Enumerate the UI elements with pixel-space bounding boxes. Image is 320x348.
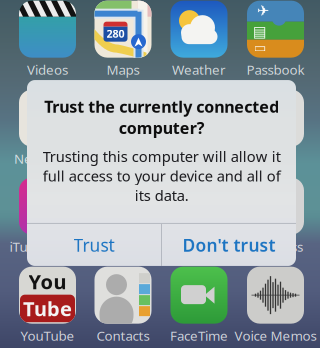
button[interactable]: Don't trust <box>162 224 296 266</box>
staticText: Trust the currently connected computer? <box>44 96 279 138</box>
staticText: Tube <box>23 295 72 322</box>
staticText: Videos <box>27 61 68 78</box>
staticText: Trust <box>73 233 114 256</box>
staticText: Weather <box>172 61 226 78</box>
staticText: Compass <box>248 238 303 255</box>
staticText: ▭ <box>253 40 266 55</box>
staticText: 280 <box>106 27 124 41</box>
button[interactable]: Trust <box>27 224 161 266</box>
staticText: Maps <box>106 61 139 78</box>
staticText: iTunes Store <box>9 238 85 255</box>
staticText: Newsstand <box>14 150 81 167</box>
staticText: Don't trust <box>182 233 275 256</box>
staticText: YouTube <box>20 327 74 344</box>
staticText: Trusting this computer will allow it ful… <box>42 146 280 205</box>
staticText: You <box>28 268 66 295</box>
staticText: Reminders <box>165 150 232 167</box>
staticText: App Store <box>92 238 153 255</box>
staticText: FaceTime <box>170 327 228 344</box>
staticText: Passbook <box>246 61 304 78</box>
staticText: ✈ <box>257 2 269 19</box>
staticText: Find <box>262 150 288 167</box>
staticText: Voice Memos <box>234 327 316 344</box>
staticText: Contacts <box>96 327 149 344</box>
staticText: Notes <box>104 150 141 167</box>
staticText: Game Center <box>157 238 240 255</box>
staticText: ▤ <box>253 23 267 40</box>
